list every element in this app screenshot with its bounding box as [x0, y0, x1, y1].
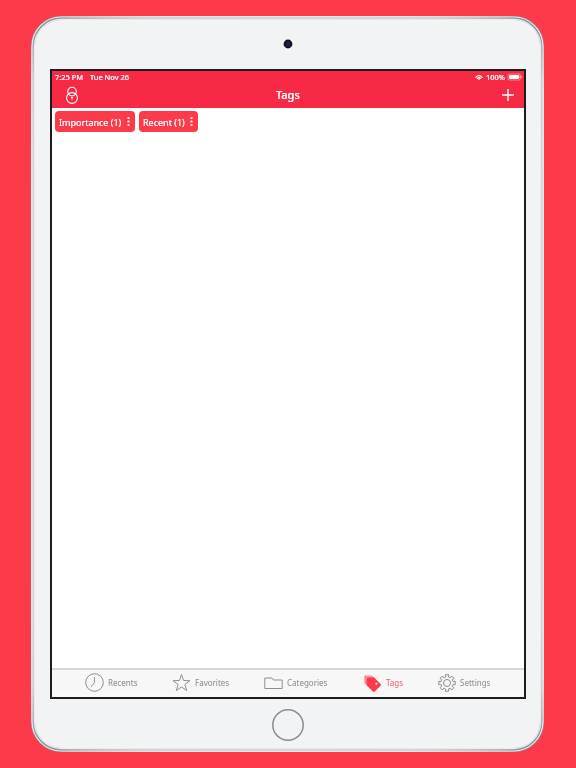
staticText: 100% [486, 72, 506, 82]
button[interactable]: Categories [247, 670, 345, 695]
staticText: Tags [276, 87, 300, 102]
staticText: Tue Nov 26 [90, 72, 130, 82]
staticText: Importance (1) [59, 116, 122, 128]
staticText: Recent (1) [143, 116, 185, 128]
button[interactable]: Add [496, 83, 520, 107]
staticText: 7:25 PM [55, 72, 84, 82]
button[interactable]: Recents [68, 670, 155, 695]
staticText: Categories [287, 677, 328, 688]
button[interactable]: Lock [60, 83, 84, 107]
button[interactable]: Importance (1) [55, 111, 135, 132]
button[interactable]: Favorites [155, 670, 247, 695]
button[interactable]: Recent (1) [139, 111, 198, 132]
button[interactable]: Tags [345, 670, 421, 695]
staticText: Tags [386, 677, 404, 688]
staticText: Recents [108, 677, 138, 688]
staticText: Favorites [195, 677, 230, 688]
button[interactable]: Settings [421, 670, 508, 695]
staticText: Settings [460, 677, 491, 688]
